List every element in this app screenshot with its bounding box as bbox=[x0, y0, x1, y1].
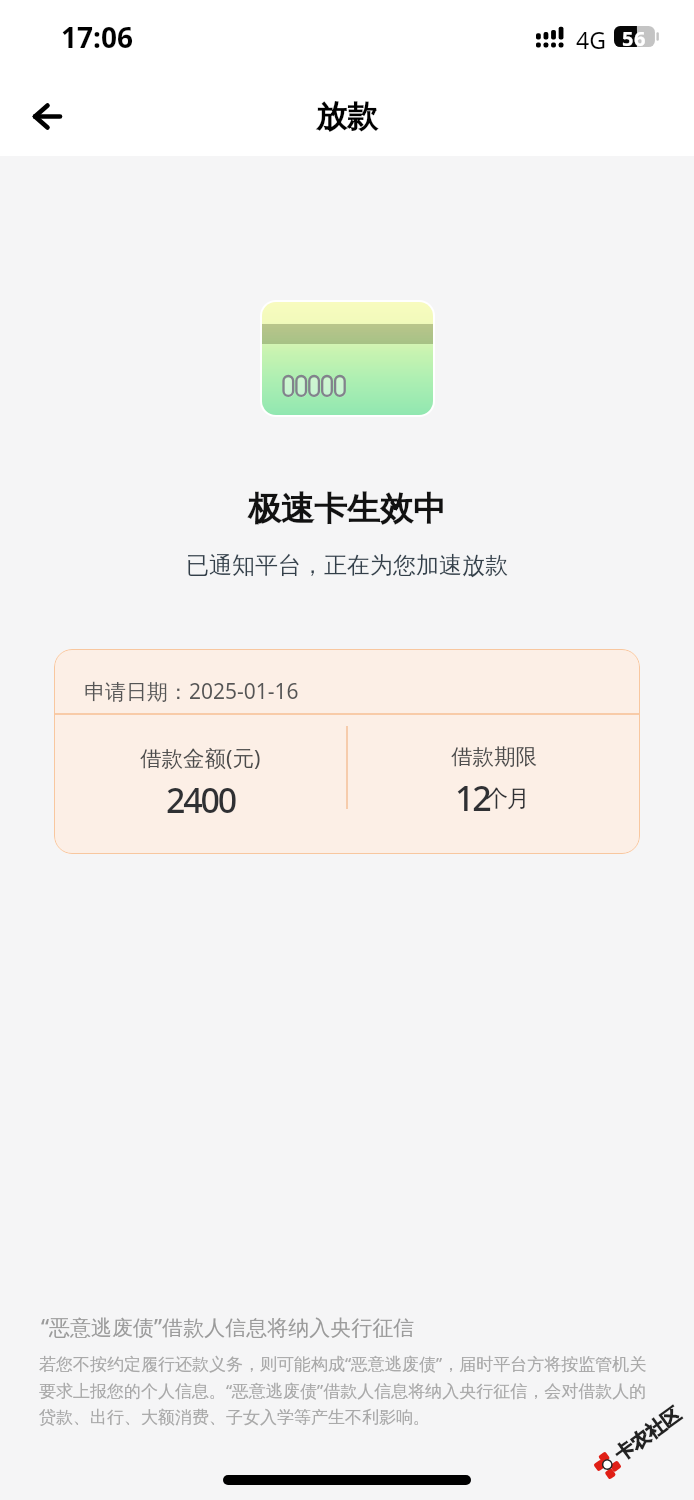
staticText: 借款金额(元) bbox=[140, 743, 261, 772]
staticText: 借款期限 bbox=[451, 743, 537, 770]
staticText: 已通知平台，正在为您加速放款 bbox=[0, 551, 694, 580]
staticText: 放款 bbox=[316, 97, 378, 136]
staticText: 5 bbox=[622, 25, 634, 46]
button[interactable]: Back bbox=[18, 87, 76, 145]
staticText: 2400 bbox=[166, 777, 235, 823]
staticText: 17:06 bbox=[61, 18, 133, 56]
staticText: 6 bbox=[634, 25, 646, 46]
staticText: 申请日期：2025-01-16 bbox=[84, 677, 299, 706]
staticText: “恶意逃废债”借款人信息将纳入央行征信 bbox=[41, 1313, 415, 1342]
staticText: 极速卡生效中 bbox=[0, 488, 694, 530]
staticText: 个月 bbox=[486, 784, 529, 813]
staticText: 若您不按约定履行还款义务，则可能构成“恶意逃废债”，届时平台方将按监管机关要求上… bbox=[39, 1352, 658, 1428]
staticText: 4G bbox=[576, 24, 606, 55]
staticText: 卡农社区 bbox=[610, 1402, 686, 1466]
staticText: 12 bbox=[455, 775, 490, 821]
